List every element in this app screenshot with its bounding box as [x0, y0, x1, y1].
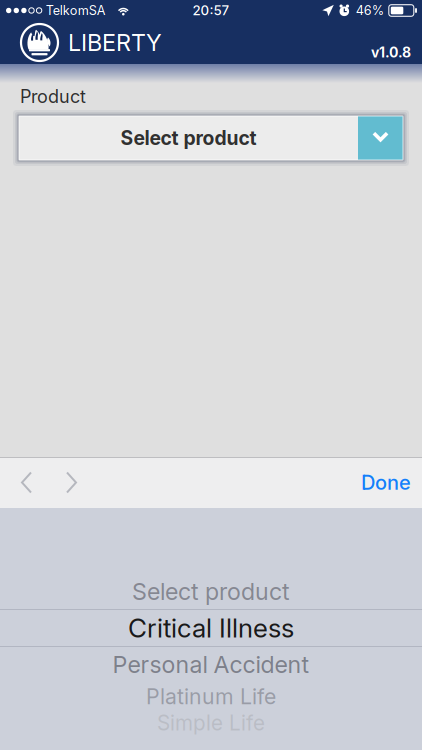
- button[interactable]: Previous: [8, 457, 45, 508]
- staticText: Critical Illness: [128, 612, 294, 644]
- staticText: Select product: [132, 577, 290, 606]
- staticText: Select product: [120, 126, 256, 150]
- staticText: TelkomSA: [46, 3, 106, 18]
- staticText: LIBERTY: [68, 28, 162, 57]
- staticText: v1.0.8: [371, 44, 411, 61]
- button[interactable]: Select product: [0, 110, 422, 166]
- staticText: Personal Accident: [112, 650, 309, 679]
- staticText: 46%: [356, 3, 384, 18]
- staticText: Done: [361, 470, 411, 495]
- staticText: 20:57: [192, 2, 229, 18]
- staticText: Platinum Life: [146, 684, 276, 709]
- staticText: Product: [20, 86, 86, 107]
- button[interactable]: Next: [53, 457, 90, 508]
- staticText: Simple Life: [157, 710, 265, 735]
- button[interactable]: Done: [350, 457, 422, 508]
